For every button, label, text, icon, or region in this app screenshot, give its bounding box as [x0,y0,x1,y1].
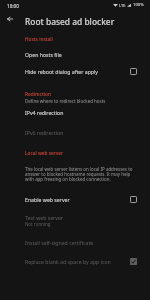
staticText: IPv6 redirection [25,129,64,136]
staticText: Open hosts file [25,51,62,58]
staticText: Redirection [25,91,51,97]
button[interactable]: Replace blank ad space by app icon [0,255,150,267]
button[interactable]: Install self-signed certificate [0,236,150,248]
staticText: LTE [119,3,126,8]
staticText: Hide reboot dialog after apply [25,68,99,75]
staticText: Install self-signed certificate [25,239,94,246]
button[interactable]: IPv6 redirection [0,126,150,138]
staticText: Local web server [25,150,64,156]
button[interactable]: Open hosts file [0,48,150,60]
staticText: Replace blank ad space by app icon [25,258,111,265]
button[interactable]: IPv4 redirection [0,106,150,118]
button[interactable]: Back [0,9,19,28]
staticText: 10:00 [7,3,19,9]
staticText: Root based ad blocker [25,16,115,27]
button[interactable]: Test web server [0,212,150,228]
staticText: The local web server listens on local IP… [25,166,140,183]
button[interactable]: Hide reboot dialog after apply [0,65,150,77]
staticText: Hosts install [25,36,53,42]
staticText: Not running [25,221,51,227]
staticText: Enable web server [25,196,70,203]
staticText: Test web server [25,214,63,221]
button[interactable]: Enable web server [0,193,150,205]
staticText: IPv4 redirection [25,109,64,116]
staticText: Define where to redirect blocked hosts [25,98,106,104]
staticText: 100% [133,2,144,8]
